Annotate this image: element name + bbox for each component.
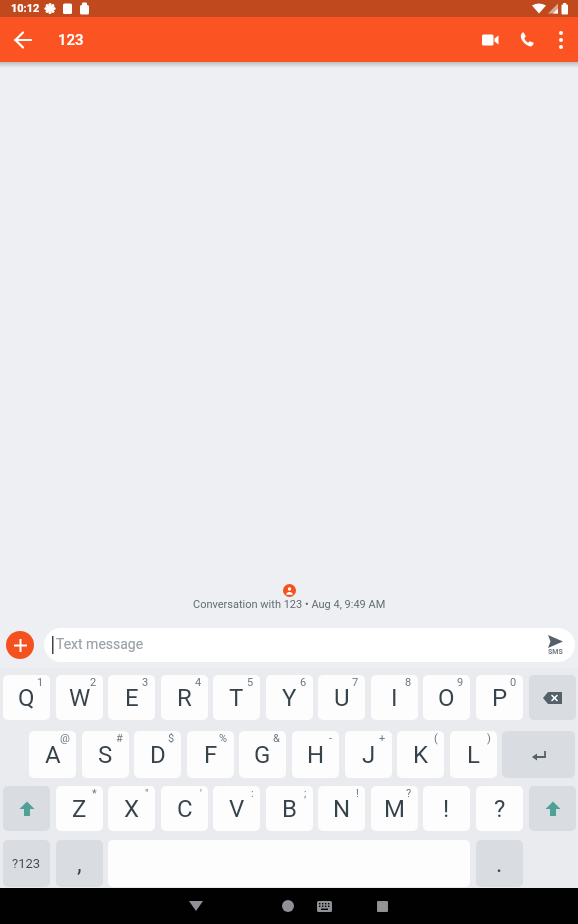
button[interactable] bbox=[508, 17, 544, 62]
button[interactable] bbox=[364, 888, 400, 924]
staticText: ' bbox=[200, 787, 202, 800]
staticText: M bbox=[384, 795, 405, 823]
staticText: ; bbox=[304, 787, 307, 800]
button[interactable] bbox=[308, 888, 341, 924]
button[interactable]: W bbox=[56, 675, 103, 720]
staticText: K bbox=[413, 741, 429, 769]
staticText: ? bbox=[494, 795, 506, 823]
staticText: * bbox=[92, 787, 97, 800]
staticText: F bbox=[204, 741, 218, 769]
button[interactable] bbox=[0, 17, 45, 62]
button[interactable]: SMS bbox=[535, 628, 575, 662]
staticText: + bbox=[379, 732, 386, 745]
staticText: ) bbox=[487, 732, 491, 745]
button[interactable]: O bbox=[423, 675, 470, 720]
button[interactable]: ? bbox=[476, 786, 523, 831]
button[interactable]: R bbox=[161, 675, 208, 720]
button[interactable]: L bbox=[450, 731, 497, 778]
button[interactable]: G bbox=[239, 731, 286, 778]
staticText: B bbox=[282, 795, 297, 823]
staticText: N bbox=[333, 795, 351, 823]
staticText: ! bbox=[356, 787, 359, 800]
button[interactable]: C bbox=[161, 786, 208, 831]
staticText: L bbox=[467, 741, 480, 769]
staticText: Y bbox=[282, 684, 297, 712]
staticText: 0 bbox=[510, 676, 517, 689]
button[interactable] bbox=[178, 888, 214, 924]
staticText: # bbox=[116, 732, 123, 745]
button[interactable]: H bbox=[292, 731, 339, 778]
staticText: P bbox=[492, 684, 508, 712]
button[interactable]: Q bbox=[3, 675, 50, 720]
button[interactable]: Y bbox=[266, 675, 313, 720]
staticText: E bbox=[125, 684, 139, 712]
button[interactable]: E bbox=[108, 675, 155, 720]
staticText: $ bbox=[168, 732, 175, 745]
button[interactable]: B bbox=[266, 786, 313, 831]
staticText: D bbox=[150, 741, 166, 769]
staticText: , bbox=[77, 850, 82, 878]
staticText: ( bbox=[434, 732, 438, 745]
staticText: Text message bbox=[56, 636, 144, 652]
button[interactable]: J bbox=[345, 731, 392, 778]
staticText: 8 bbox=[405, 676, 412, 689]
button[interactable]: U bbox=[318, 675, 365, 720]
button[interactable]: I bbox=[371, 675, 418, 720]
staticText: H bbox=[307, 741, 325, 769]
staticText: A bbox=[45, 741, 61, 769]
staticText: " bbox=[145, 787, 149, 800]
button[interactable]: K bbox=[397, 731, 444, 778]
staticText: S bbox=[98, 741, 113, 769]
staticText: ! bbox=[443, 795, 450, 823]
button[interactable]: S bbox=[82, 731, 129, 778]
staticText: Q bbox=[18, 684, 35, 712]
button[interactable]: A bbox=[29, 731, 76, 778]
button[interactable]: ! bbox=[423, 786, 470, 831]
button[interactable] bbox=[270, 888, 306, 924]
button[interactable]: V bbox=[213, 786, 260, 831]
staticText: W bbox=[69, 684, 91, 712]
button[interactable] bbox=[6, 631, 34, 659]
staticText: Z bbox=[72, 795, 87, 823]
button[interactable] bbox=[529, 675, 576, 720]
button[interactable]: T bbox=[213, 675, 260, 720]
staticText: ?123 bbox=[12, 856, 41, 871]
staticText: 4 bbox=[195, 676, 202, 689]
button[interactable]: X bbox=[108, 786, 155, 831]
button[interactable]: ?123 bbox=[3, 840, 50, 887]
staticText: J bbox=[362, 741, 376, 769]
button[interactable]: M bbox=[371, 786, 418, 831]
button[interactable]: D bbox=[134, 731, 181, 778]
staticText: - bbox=[329, 732, 333, 745]
button[interactable]: N bbox=[318, 786, 365, 831]
staticText: I bbox=[391, 684, 398, 712]
button[interactable]: P bbox=[476, 675, 523, 720]
staticText: & bbox=[273, 732, 280, 745]
staticText: 6 bbox=[300, 676, 307, 689]
staticText: C bbox=[177, 795, 193, 823]
button[interactable]: Text message bbox=[44, 628, 575, 662]
staticText: G bbox=[254, 741, 271, 769]
staticText: X bbox=[124, 795, 140, 823]
staticText: 2 bbox=[90, 676, 97, 689]
staticText: % bbox=[219, 732, 228, 745]
staticText: R bbox=[177, 684, 192, 712]
staticText: . bbox=[496, 850, 503, 878]
button[interactable]: . bbox=[476, 840, 523, 887]
staticText: ? bbox=[406, 787, 412, 800]
staticText: 9 bbox=[457, 676, 464, 689]
button[interactable] bbox=[472, 17, 508, 62]
staticText: T bbox=[229, 684, 244, 712]
staticText: 10:12 bbox=[11, 2, 40, 15]
button[interactable] bbox=[544, 17, 578, 62]
button[interactable]: Z bbox=[56, 786, 103, 831]
button[interactable] bbox=[3, 786, 50, 831]
staticText: 1 bbox=[37, 676, 44, 689]
staticText: 123 bbox=[58, 31, 84, 49]
button[interactable]: , bbox=[56, 840, 103, 887]
button[interactable] bbox=[502, 731, 575, 778]
button[interactable] bbox=[529, 786, 576, 831]
button[interactable]: F bbox=[187, 731, 234, 778]
staticText: SMS bbox=[548, 648, 563, 656]
